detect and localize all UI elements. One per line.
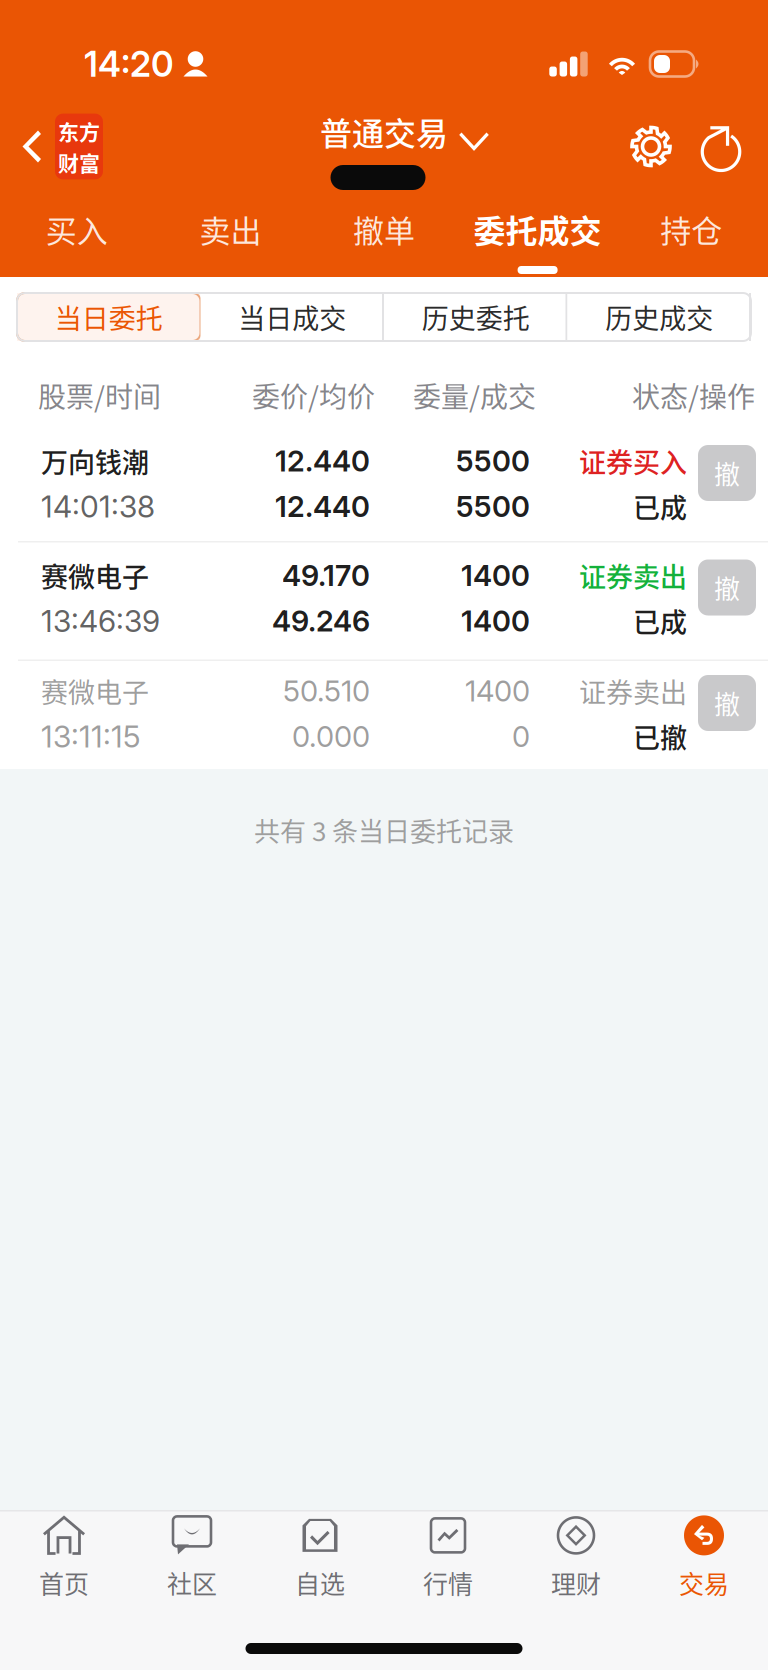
staticText: 12.440 (275, 489, 370, 524)
button[interactable]: Back (0, 100, 103, 193)
staticText: 12.440 (275, 443, 370, 479)
staticText: 撤 (714, 684, 740, 722)
staticText: 13:46:39 (41, 603, 160, 639)
staticText: 证券卖出 (579, 671, 687, 711)
staticText: 14:01:38 (41, 488, 155, 525)
staticText: 卖出 (199, 207, 261, 251)
staticText: 理财 (551, 1564, 601, 1601)
staticText: 13:11:15 (41, 718, 141, 755)
staticText: 万向钱潮 (41, 441, 149, 481)
staticText: 49.246 (272, 603, 370, 639)
button[interactable]: 交易 (640, 1511, 768, 1603)
staticText: 撤单 (353, 207, 415, 251)
staticText: 当日委托 (55, 297, 163, 337)
staticText: 0 (512, 719, 530, 754)
button[interactable]: 卖出 (154, 193, 307, 277)
button[interactable]: 普通交易 (300, 123, 468, 170)
staticText: 当日成交 (238, 297, 346, 337)
staticText: 共有 3 条当日委托记录 (254, 811, 514, 849)
button[interactable]: 行情 (384, 1511, 512, 1603)
staticText: 14:20 (84, 43, 174, 85)
staticText: 5500 (456, 489, 530, 524)
staticText: 证券卖出 (579, 556, 687, 595)
staticText: 社区 (167, 1564, 217, 1601)
button[interactable]: 持仓 (614, 193, 768, 277)
staticText: 证券买入 (579, 441, 687, 481)
staticText: 买入 (46, 207, 108, 251)
button[interactable]: 当日委托 (17, 293, 200, 341)
staticText: 首页 (39, 1564, 89, 1601)
staticText: 持仓 (660, 207, 722, 251)
button[interactable]: 撤 (698, 559, 756, 615)
button[interactable]: 历史成交 (567, 293, 751, 341)
button[interactable]: 委托成交 (461, 193, 614, 277)
staticText: 普通交易 (320, 108, 448, 155)
staticText: 1400 (461, 558, 530, 593)
button[interactable]: 撤 (698, 445, 756, 501)
staticText: 财富 (58, 147, 100, 177)
button[interactable]: 撤单 (307, 193, 461, 277)
staticText: 49.170 (282, 558, 370, 593)
button[interactable]: 买入 (0, 193, 154, 277)
staticText: 撤 (714, 569, 740, 606)
staticText: 东方 (58, 116, 100, 146)
button[interactable]: 社区 (128, 1511, 256, 1603)
staticText: 交易 (679, 1564, 729, 1601)
staticText: 已成 (633, 487, 687, 526)
button[interactable]: 历史委托 (384, 293, 567, 341)
button[interactable]: 撤 (698, 675, 756, 731)
button[interactable]: 理财 (512, 1511, 640, 1603)
staticText: 1400 (461, 603, 530, 639)
staticText: 已成 (633, 601, 687, 641)
button[interactable]: Settings (630, 125, 672, 167)
staticText: 股票/时间 (38, 375, 161, 415)
staticText: 撤 (714, 454, 740, 492)
staticText: 委托成交 (474, 206, 602, 252)
staticText: 已撤 (633, 717, 687, 756)
staticText: 行情 (423, 1564, 473, 1601)
staticText: 0.000 (292, 719, 370, 754)
staticText: 历史成交 (605, 297, 713, 337)
staticText: 委价/均价 (252, 375, 375, 415)
staticText: 5500 (456, 443, 530, 479)
staticText: 1400 (465, 673, 530, 709)
staticText: 自选 (295, 1564, 345, 1601)
staticText: 赛微电子 (41, 556, 149, 595)
staticText: 赛微电子 (41, 671, 149, 711)
staticText: 50.510 (283, 673, 370, 709)
staticText: 委量/成交 (413, 375, 536, 415)
staticText: 状态/操作 (632, 375, 755, 415)
staticText: 历史委托 (422, 297, 530, 337)
button[interactable]: 当日成交 (200, 293, 384, 341)
button[interactable]: 首页 (0, 1511, 128, 1603)
button[interactable]: 自选 (256, 1511, 384, 1603)
button[interactable]: Refresh (700, 122, 742, 170)
